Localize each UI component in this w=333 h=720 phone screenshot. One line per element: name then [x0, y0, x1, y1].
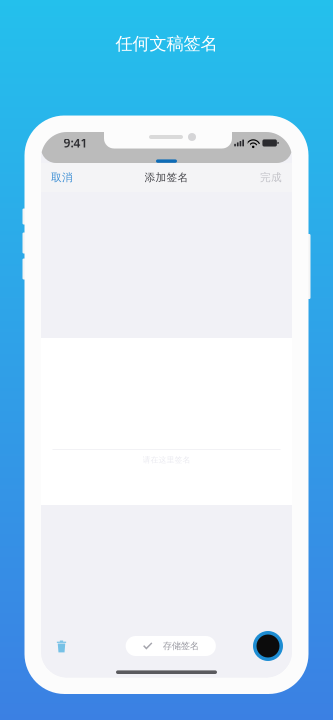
staticText: 请在这里签名 [142, 455, 190, 465]
staticText: 完成 [260, 171, 282, 184]
staticText: 9:41 [63, 135, 87, 151]
button[interactable]: 完成 [250, 163, 292, 192]
button[interactable]: Ink colour [253, 631, 283, 661]
staticText: 添加签名 [144, 171, 188, 184]
staticText: 存储签名 [163, 640, 199, 652]
button[interactable]: 存储签名 [126, 636, 216, 656]
button[interactable]: Delete signature [48, 633, 74, 659]
staticText: 任何文稿签名 [115, 33, 217, 54]
button[interactable]: 取消 [41, 163, 83, 192]
staticText: 取消 [51, 171, 73, 184]
